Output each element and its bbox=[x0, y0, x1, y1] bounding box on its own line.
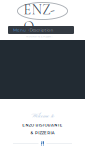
staticText: ENZO RISTORANTE bbox=[22, 123, 63, 128]
staticText: ENZO bbox=[23, 1, 55, 35]
staticText: Welcome to bbox=[31, 112, 54, 120]
button[interactable]: Menu bbox=[13, 27, 26, 33]
staticText: › Description bbox=[27, 28, 53, 32]
staticText: & PIZZERIA bbox=[30, 131, 55, 135]
staticText: RISTORANTE & PIZZERIA bbox=[26, 35, 52, 38]
staticText: Menu bbox=[13, 27, 26, 33]
